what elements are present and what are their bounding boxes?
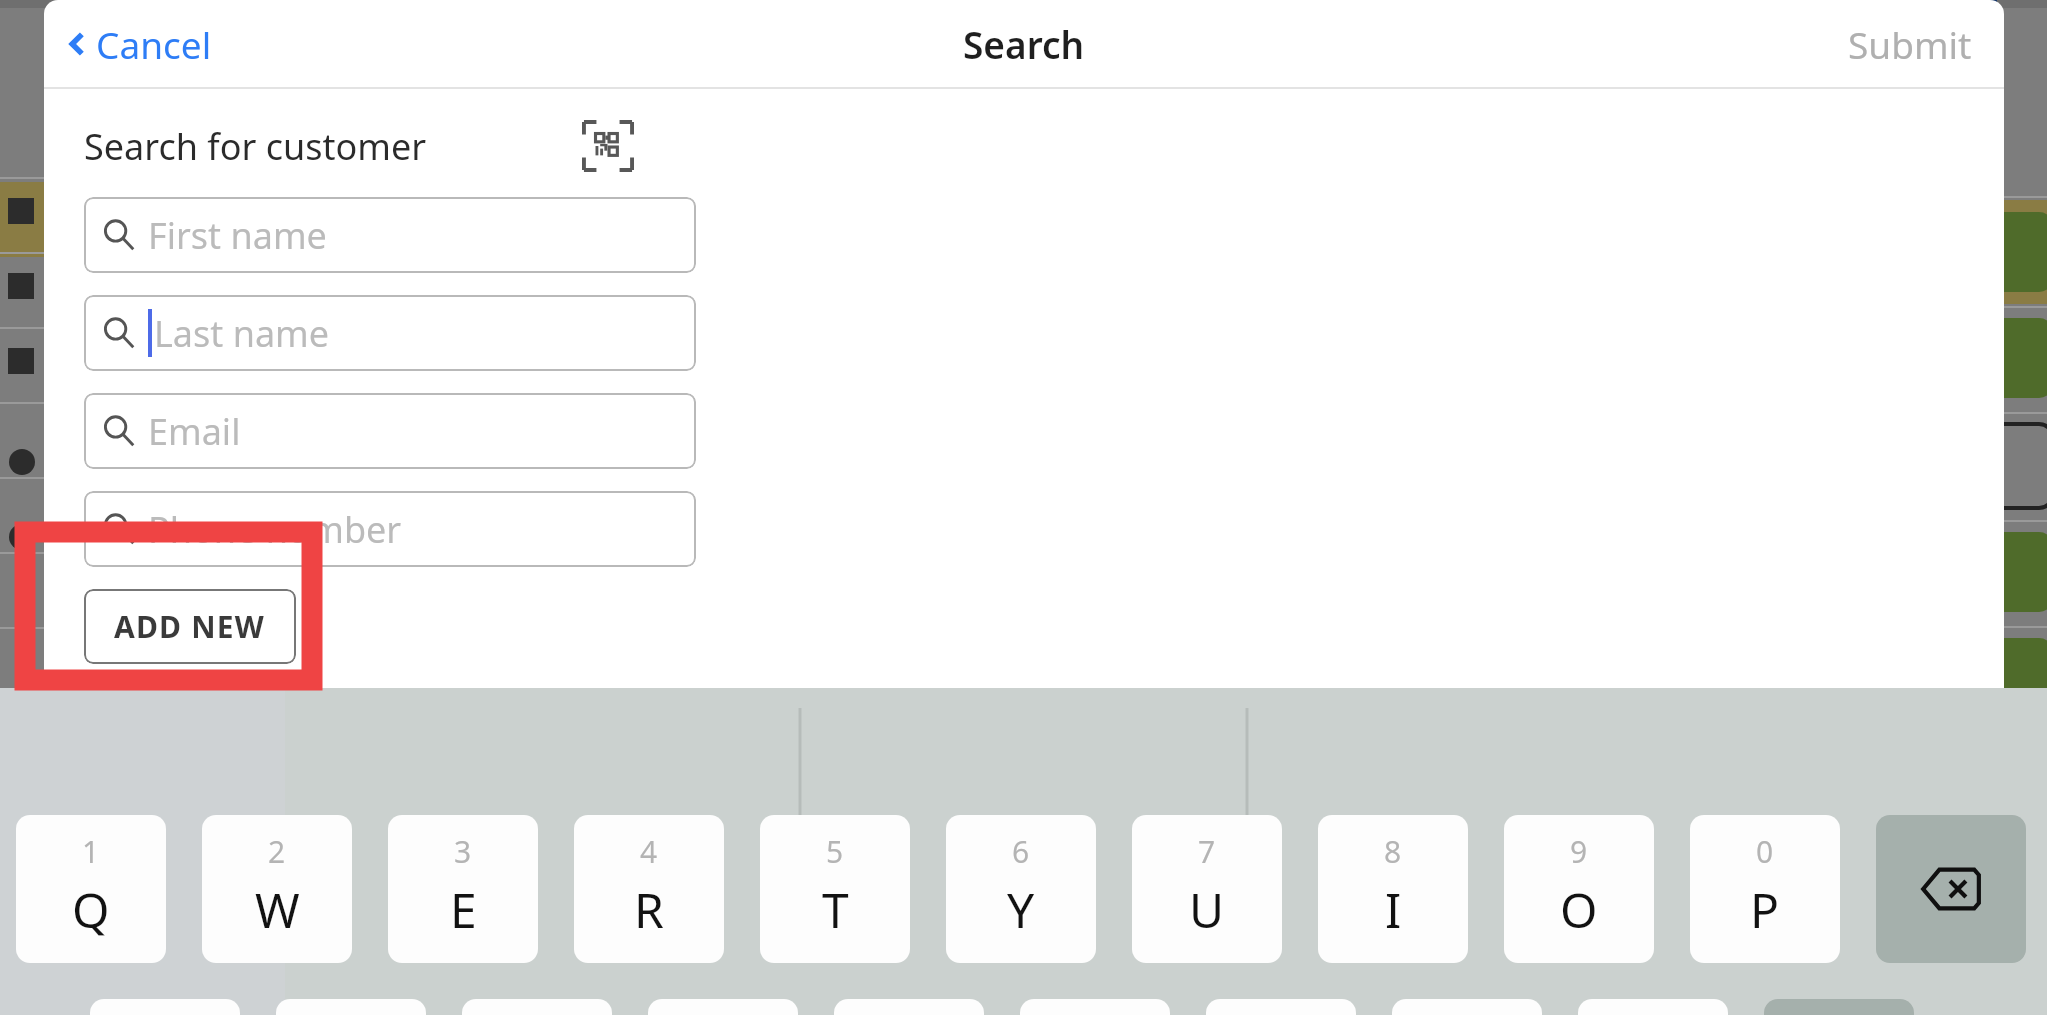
staticText: O	[1560, 877, 1598, 942]
staticText: Y	[1007, 877, 1035, 942]
button[interactable]	[462, 999, 612, 1015]
staticText: 0	[1756, 831, 1774, 872]
staticText: Submit	[1848, 19, 1972, 69]
staticText: 4	[640, 831, 658, 872]
staticText: First name	[148, 211, 327, 260]
staticText: Cancel	[96, 19, 212, 69]
button[interactable]: Submit	[1834, 11, 1986, 77]
button[interactable]	[1206, 999, 1356, 1015]
button[interactable]: 8	[1318, 815, 1468, 963]
button[interactable]	[90, 999, 240, 1015]
staticText: 8	[1384, 831, 1402, 872]
staticText: R	[634, 877, 664, 942]
staticText: 1	[82, 831, 100, 872]
button[interactable]	[648, 999, 798, 1015]
button[interactable]: Phone number	[84, 491, 696, 567]
staticText: ADD NEW	[114, 606, 266, 647]
staticText: 9	[1570, 831, 1588, 872]
staticText: 5	[826, 831, 844, 872]
button[interactable]: 6	[946, 815, 1096, 963]
button[interactable]	[1578, 999, 1728, 1015]
button[interactable]	[1020, 999, 1170, 1015]
staticText: I	[1385, 877, 1402, 942]
button[interactable]: Email	[84, 393, 696, 469]
staticText: T	[822, 877, 849, 942]
button[interactable]	[276, 999, 426, 1015]
staticText: 2	[268, 831, 286, 872]
staticText: U	[1189, 877, 1225, 942]
button[interactable]: 3	[388, 815, 538, 963]
button[interactable]: 1	[16, 815, 166, 963]
button[interactable]: 2	[202, 815, 352, 963]
button[interactable]: 7	[1132, 815, 1282, 963]
staticText: W	[255, 877, 300, 942]
button[interactable]: ADD NEW	[84, 589, 296, 664]
button[interactable]: 4	[574, 815, 724, 963]
staticText: E	[450, 877, 477, 942]
staticText: Search for customer	[84, 122, 427, 171]
button[interactable]	[1392, 999, 1542, 1015]
staticText: Q	[72, 877, 110, 942]
staticText: Phone number	[148, 505, 402, 554]
button[interactable]: Last name	[84, 295, 696, 371]
staticText: Last name	[154, 309, 330, 358]
staticText: 6	[1012, 831, 1030, 872]
button[interactable]: Backspace	[1876, 815, 2026, 963]
staticText: 7	[1198, 831, 1216, 872]
button[interactable]: Cancel	[54, 11, 224, 77]
button[interactable]: First name	[84, 197, 696, 273]
staticText: Email	[148, 407, 241, 456]
button[interactable]	[1764, 999, 1914, 1015]
button[interactable]: 5	[760, 815, 910, 963]
button[interactable]	[834, 999, 984, 1015]
staticText: Search	[963, 19, 1085, 69]
button[interactable]: Scan QR code	[578, 116, 638, 176]
button[interactable]: 0	[1690, 815, 1840, 963]
staticText: P	[1750, 877, 1780, 942]
button[interactable]: 9	[1504, 815, 1654, 963]
staticText: 3	[454, 831, 472, 872]
